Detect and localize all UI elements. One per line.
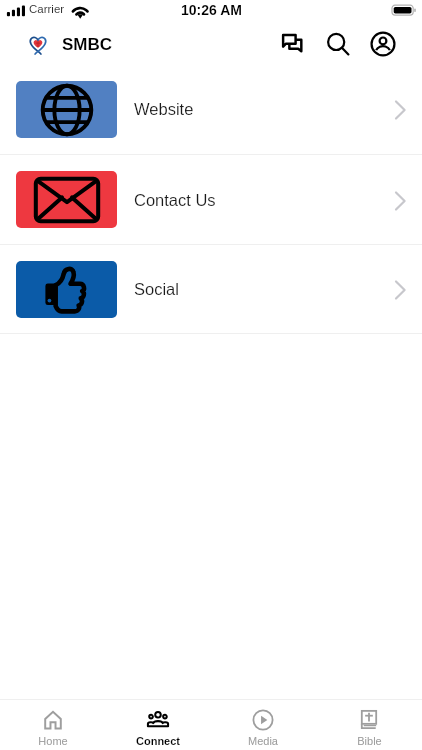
staticText: Home: [38, 735, 68, 747]
button[interactable]: Social: [0, 245, 422, 334]
staticText: Media: [248, 735, 278, 747]
staticText: Bible: [357, 735, 382, 747]
staticText: SMBC: [62, 35, 113, 54]
button[interactable]: Messages: [271, 24, 315, 64]
button[interactable]: Account: [361, 24, 405, 64]
staticText: Website: [134, 100, 194, 118]
button[interactable]: Contact Us: [0, 155, 422, 245]
button[interactable]: Bible: [316, 708, 422, 750]
button[interactable]: Media: [210, 708, 316, 750]
button[interactable]: Search: [316, 24, 360, 64]
button[interactable]: Website: [0, 64, 422, 155]
button[interactable]: Home: [0, 708, 105, 750]
staticText: Connect: [136, 735, 180, 747]
button[interactable]: Connect: [105, 708, 210, 750]
staticText: Social: [134, 280, 179, 298]
staticText: Contact Us: [134, 191, 216, 209]
staticText: 10:26 AM: [181, 2, 242, 18]
staticText: Carrier: [29, 3, 65, 16]
